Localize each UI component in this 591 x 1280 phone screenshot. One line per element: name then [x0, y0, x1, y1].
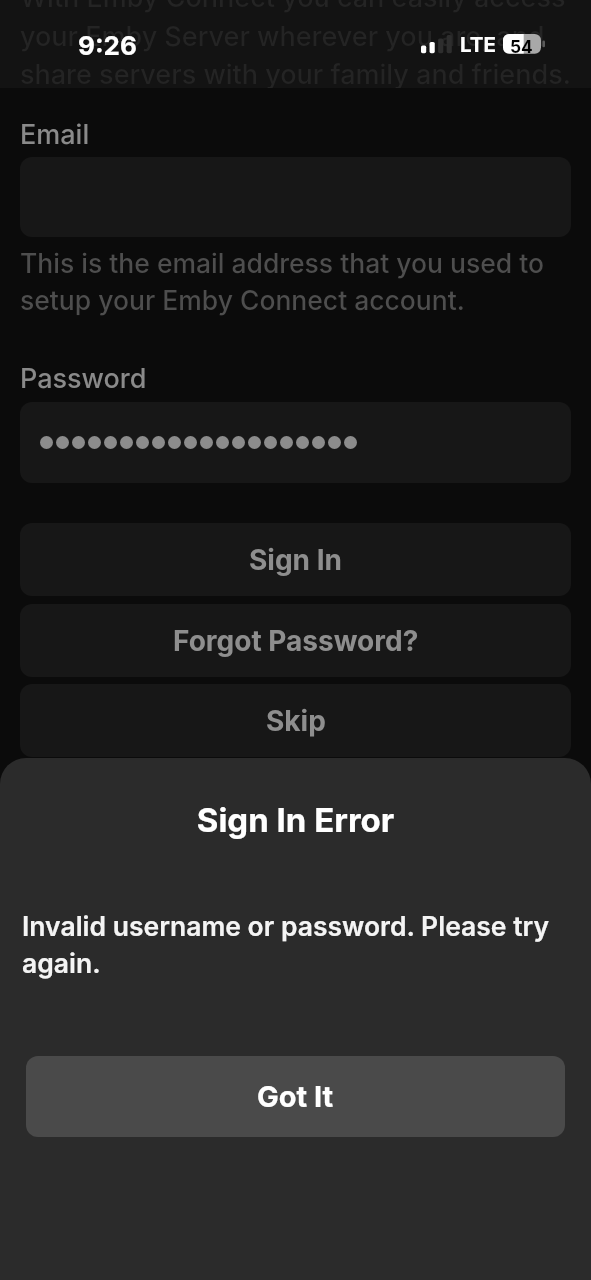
- button[interactable]: Sign In: [20, 523, 571, 596]
- staticText: Password: [20, 362, 147, 395]
- staticText: Email: [20, 118, 90, 151]
- button[interactable]: Skip: [20, 684, 571, 757]
- staticText: LTE: [460, 32, 496, 57]
- button[interactable]: Password input: [20, 402, 571, 483]
- staticText: This is the email address that you used …: [20, 247, 571, 317]
- staticText: 54: [510, 36, 533, 56]
- staticText: With Emby Connect you can easily access …: [20, 0, 571, 88]
- staticText: Invalid username or password. Please try…: [22, 910, 569, 979]
- staticText: 9:26: [78, 30, 137, 61]
- button[interactable]: Forgot Password?: [20, 604, 571, 677]
- staticText: Forgot Password?: [173, 624, 419, 658]
- staticText: Sign In: [249, 543, 342, 577]
- button[interactable]: Got It: [26, 1056, 565, 1137]
- staticText: Sign In Error: [0, 800, 591, 840]
- staticText: Got It: [257, 1079, 334, 1114]
- staticText: Skip: [266, 704, 326, 738]
